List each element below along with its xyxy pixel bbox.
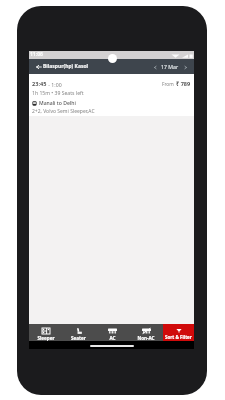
button[interactable]: Seater bbox=[62, 324, 95, 341]
staticText: From bbox=[162, 81, 176, 88]
staticText: Sort & Filter bbox=[165, 334, 192, 340]
staticText: 11:06 bbox=[30, 51, 43, 58]
button[interactable]: Next day bbox=[182, 64, 188, 70]
staticText: AC bbox=[109, 335, 116, 341]
staticText: 2+2, Volvo Semi Sleeper,AC bbox=[32, 108, 95, 115]
staticText: Manali to Delhi bbox=[39, 100, 76, 107]
staticText: ₹ 789 bbox=[176, 80, 191, 88]
staticText: 17 Mar bbox=[161, 63, 179, 70]
button[interactable]: Back bbox=[35, 63, 42, 70]
staticText: Seater bbox=[71, 335, 86, 341]
staticText: 1h 15m • 39 Seats left bbox=[32, 90, 84, 97]
staticText: - 1:00 bbox=[47, 81, 62, 88]
button[interactable]: 23:45 bbox=[29, 74, 194, 116]
staticText: Non-AC bbox=[137, 335, 155, 341]
staticText: Bilaspur(hp) Kasol bbox=[43, 63, 89, 70]
button[interactable]: Non-AC bbox=[129, 324, 163, 341]
button[interactable]: Previous day bbox=[152, 64, 158, 70]
button[interactable]: AC bbox=[95, 324, 129, 341]
button[interactable]: Sleeper bbox=[29, 324, 62, 341]
staticText: Sleeper bbox=[37, 335, 55, 341]
staticText: 23:45 bbox=[32, 80, 47, 88]
button[interactable]: Sort & Filter bbox=[163, 324, 194, 341]
